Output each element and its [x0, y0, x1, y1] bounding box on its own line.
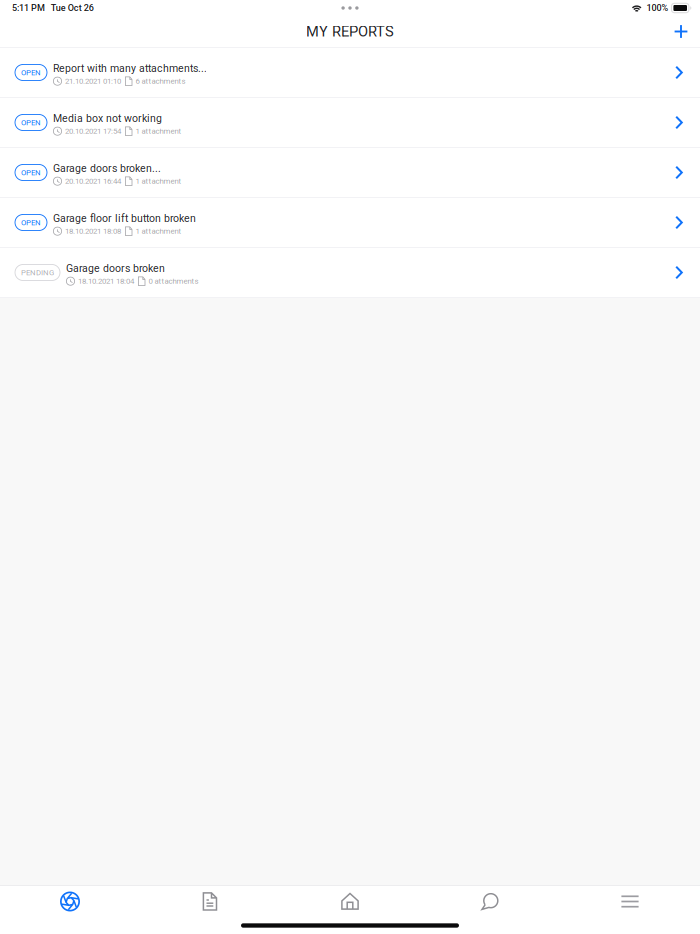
button[interactable]: OPEN	[0, 198, 700, 248]
button[interactable]: OPEN	[0, 48, 700, 98]
staticText: 1 attachment	[135, 127, 181, 136]
button[interactable]: Menu	[560, 886, 700, 917]
staticText: Garage floor lift button broken	[53, 212, 196, 224]
staticText: 1 attachment	[135, 177, 181, 186]
staticText: 20.10.2021 17:54	[65, 127, 121, 136]
staticText: MY REPORTS	[306, 23, 394, 40]
staticText: Report with many attachments...	[53, 62, 207, 74]
staticText: OPEN	[21, 68, 41, 77]
staticText: 21.10.2021 01:10	[65, 77, 121, 86]
staticText: OPEN	[21, 118, 41, 127]
staticText: 6 attachments	[135, 77, 185, 86]
staticText: OPEN	[21, 168, 41, 177]
button[interactable]: Camera	[0, 886, 140, 917]
staticText: Garage doors broken...	[53, 162, 161, 174]
staticText: OPEN	[21, 218, 41, 227]
staticText: 0 attachments	[148, 277, 198, 286]
staticText: 18.10.2021 18:08	[65, 227, 121, 236]
button[interactable]: PENDING	[0, 248, 700, 298]
button[interactable]: Add report	[666, 18, 696, 44]
staticText: 20.10.2021 16:44	[65, 177, 121, 186]
staticText: Garage doors broken	[66, 262, 165, 274]
button[interactable]: Reports	[140, 886, 280, 917]
staticText: 100%	[646, 3, 668, 13]
button[interactable]: OPEN	[0, 98, 700, 148]
staticText: Tue Oct 26	[51, 3, 94, 13]
staticText: PENDING	[21, 268, 54, 277]
staticText: Media box not working	[53, 112, 162, 124]
staticText: 1 attachment	[135, 227, 181, 236]
button[interactable]: Messages	[420, 886, 560, 917]
button[interactable]: OPEN	[0, 148, 700, 198]
button[interactable]: Home	[280, 886, 420, 917]
staticText: 18.10.2021 18:04	[78, 277, 134, 286]
staticText: 5:11 PM	[12, 3, 45, 13]
